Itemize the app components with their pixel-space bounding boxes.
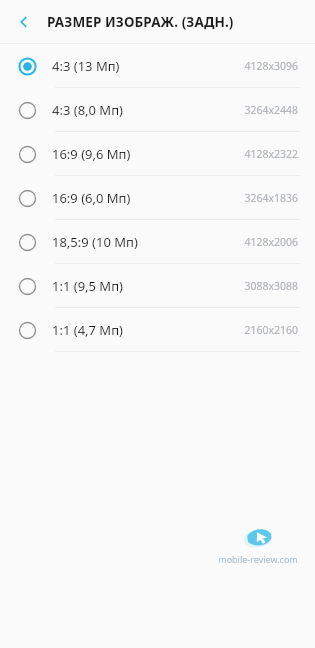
button[interactable]: 1:1 (9,5 Мп)	[0, 264, 315, 308]
staticText: 4128x3096	[244, 59, 298, 73]
staticText: 3264x2448	[244, 103, 298, 117]
staticText: 1:1 (4,7 Мп)	[52, 321, 123, 339]
button[interactable]: 16:9 (6,0 Мп)	[0, 176, 315, 220]
staticText: 1:1 (9,5 Мп)	[52, 277, 123, 295]
button[interactable]: 18,5:9 (10 Мп)	[0, 220, 315, 264]
staticText: 16:9 (6,0 Мп)	[52, 189, 131, 207]
staticText: 4128x2322	[244, 147, 298, 161]
button[interactable]: Назад	[8, 6, 40, 38]
staticText: 16:9 (9,6 Мп)	[52, 145, 131, 163]
staticText: 3088x3088	[244, 279, 298, 293]
staticText: mobile-review.com	[218, 553, 298, 565]
button[interactable]: 4:3 (8,0 Мп)	[0, 88, 315, 132]
staticText: 4128x2006	[244, 235, 298, 249]
staticText: 2160x2160	[244, 323, 298, 337]
staticText: 4:3 (8,0 Мп)	[52, 101, 123, 119]
staticText: 4:3 (13 Мп)	[52, 57, 120, 75]
staticText: 18,5:9 (10 Мп)	[52, 233, 138, 251]
staticText: 3264x1836	[244, 191, 298, 205]
button[interactable]: 4:3 (13 Мп)	[0, 44, 315, 88]
button[interactable]: 1:1 (4,7 Мп)	[0, 308, 315, 352]
button[interactable]: 16:9 (9,6 Мп)	[0, 132, 315, 176]
staticText: РАЗМЕР ИЗОБРАЖ. (ЗАДН.)	[47, 13, 234, 31]
